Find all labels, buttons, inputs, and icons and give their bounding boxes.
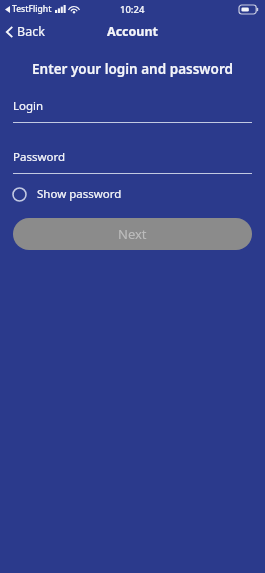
staticText: 10:24 (120, 3, 145, 16)
staticText: Show password (37, 186, 122, 202)
staticText: Password (13, 149, 66, 165)
button[interactable]: Back (0, 19, 53, 44)
staticText: Login (13, 98, 44, 114)
button[interactable]: Next (13, 218, 252, 250)
staticText: TestFlight (12, 3, 52, 15)
staticText: Account (107, 23, 159, 40)
button[interactable]: Password (0, 149, 265, 174)
staticText: Next (118, 225, 147, 243)
button[interactable]: Show password toggle (0, 182, 136, 206)
staticText: Back (17, 23, 45, 40)
other: Show password toggle (12, 187, 27, 202)
staticText: Enter your login and password (8, 60, 257, 78)
button[interactable]: Login (0, 98, 265, 123)
